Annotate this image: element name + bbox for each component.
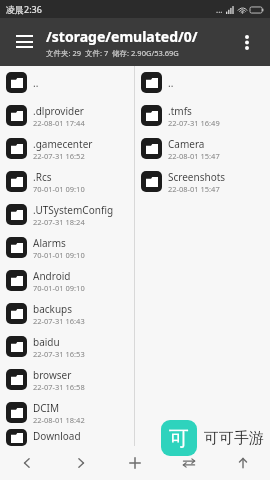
staticText: 70-01-01 09:10 xyxy=(33,250,85,260)
staticText: .gamecenter xyxy=(33,137,93,151)
staticText: .tmfs xyxy=(168,104,192,118)
button[interactable]: .dlprovider xyxy=(0,99,134,132)
button[interactable]: Transfer xyxy=(162,446,216,480)
staticText: 22-08-01 17:44 xyxy=(33,118,85,128)
staticText: Android xyxy=(33,269,71,283)
staticText: 22-07-31 16:49 xyxy=(168,118,220,128)
button[interactable]: Download xyxy=(0,429,134,446)
staticText: .dlprovider xyxy=(33,104,84,118)
staticText: 可可手游 xyxy=(204,429,264,448)
button[interactable]: Menu xyxy=(10,28,38,56)
staticText: .. xyxy=(168,76,174,90)
button[interactable]: backups xyxy=(0,297,134,330)
staticText: 70-01-01 09:10 xyxy=(33,184,85,194)
staticText: .Rcs xyxy=(33,170,52,184)
button[interactable]: Up xyxy=(216,446,270,480)
button[interactable]: .Rcs xyxy=(0,165,134,198)
staticText: 22-08-01 15:47 xyxy=(168,151,220,161)
staticText: 22-07-31 16:52 xyxy=(33,151,85,161)
staticText: ... xyxy=(216,4,223,15)
button[interactable]: DCIM xyxy=(0,396,134,429)
button[interactable]: Alarms xyxy=(0,231,134,264)
button[interactable]: baidu xyxy=(0,330,134,363)
staticText: 凌晨2:36 xyxy=(6,3,42,15)
staticText: browser xyxy=(33,368,72,382)
button[interactable]: Screenshots xyxy=(135,165,270,198)
staticText: backups xyxy=(33,302,73,316)
button[interactable]: Forward xyxy=(54,446,108,480)
button[interactable]: Back xyxy=(0,446,54,480)
button[interactable]: .tmfs xyxy=(135,99,270,132)
staticText: 22-07-31 16:53 xyxy=(33,349,85,359)
staticText: Alarms xyxy=(33,236,66,250)
staticText: Screenshots xyxy=(168,170,226,184)
staticText: 22-08-01 15:47 xyxy=(168,184,220,194)
staticText: .UTSystemConfig xyxy=(33,203,114,217)
button[interactable]: Android xyxy=(0,264,134,297)
staticText: 22-07-31 16:58 xyxy=(33,382,85,392)
button[interactable]: Add xyxy=(108,446,162,480)
staticText: baidu xyxy=(33,335,60,349)
staticText: 文件夹: 29 文件: 7 储存: 2.90G/53.69G xyxy=(46,48,179,58)
staticText: 70-01-01 09:10 xyxy=(33,283,85,293)
button[interactable]: .. xyxy=(0,66,134,99)
staticText: Camera xyxy=(168,137,205,151)
button[interactable]: More options xyxy=(234,29,260,55)
button[interactable]: .gamecenter xyxy=(0,132,134,165)
staticText: 可 xyxy=(169,426,189,451)
staticText: 22-07-31 16:43 xyxy=(33,316,85,326)
staticText: 22-08-01 18:42 xyxy=(33,415,85,425)
button[interactable]: Camera xyxy=(135,132,270,165)
staticText: DCIM xyxy=(33,401,60,415)
staticText: 22-07-31 18:24 xyxy=(33,217,85,227)
button[interactable]: .UTSystemConfig xyxy=(0,198,134,231)
button[interactable]: .. xyxy=(135,66,270,99)
button[interactable]: browser xyxy=(0,363,134,396)
staticText: /storage/emulated/0/ xyxy=(46,27,198,46)
staticText: .. xyxy=(33,76,39,90)
staticText: Download xyxy=(33,429,81,443)
